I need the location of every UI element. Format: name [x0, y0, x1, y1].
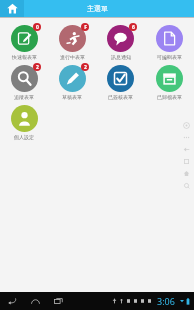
staticText: 個人設定 [14, 134, 34, 140]
button[interactable]: Recents [52, 294, 65, 308]
staticText: 0 [36, 24, 39, 31]
button[interactable]: 個人設定 [0, 103, 48, 143]
button[interactable]: 可編輯表單 [145, 23, 194, 63]
staticText: 追蹤表單 [14, 94, 34, 100]
button[interactable]: Home [0, 0, 24, 17]
staticText: 可編輯表單 [157, 54, 182, 60]
staticText: 訊息通知 [111, 54, 131, 60]
button[interactable]: 6 [96, 23, 145, 63]
staticText: 快速報表單 [12, 54, 37, 60]
staticText: 進行中表單 [60, 54, 85, 60]
staticText: 草稿表單 [62, 94, 82, 100]
button[interactable]: 已歸檔表單 [145, 63, 194, 103]
staticText: 2 [84, 64, 87, 71]
button[interactable]: Back [6, 294, 19, 308]
button[interactable]: F [48, 23, 96, 63]
button[interactable]: 2 [0, 63, 48, 103]
staticText: 主選單 [87, 4, 108, 13]
staticText: F [84, 24, 87, 31]
staticText: 2 [36, 64, 39, 71]
button[interactable]: 已簽核表單 [96, 63, 145, 103]
button[interactable]: Home [29, 294, 42, 308]
staticText: 6 [132, 24, 135, 31]
staticText: 3:06 [157, 295, 175, 307]
button[interactable]: 2 [48, 63, 96, 103]
staticText: 已歸檔表單 [157, 94, 182, 100]
staticText: 已簽核表單 [108, 94, 133, 100]
button[interactable]: 0 [0, 23, 48, 63]
